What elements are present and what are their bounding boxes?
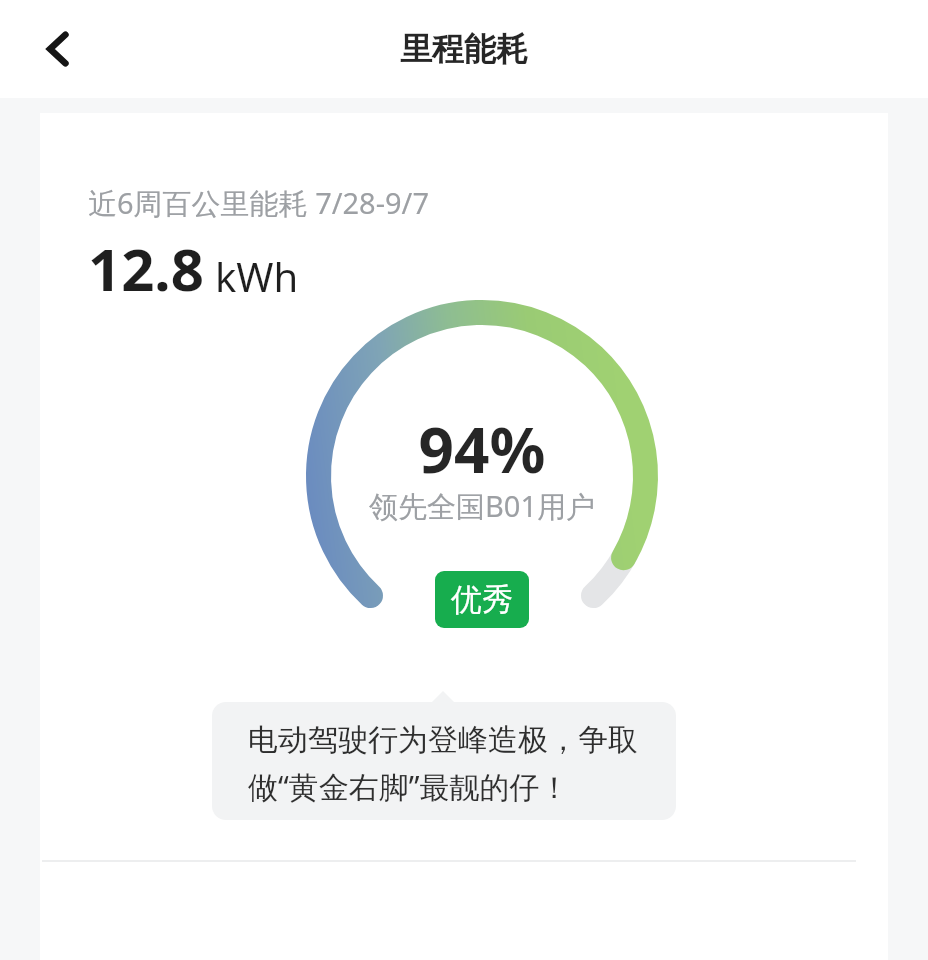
- staticText: 近6周百公里能耗 7/28-9/7: [88, 183, 429, 223]
- staticText: 电动驾驶行为登峰造极，争取 做“黄金右脚”最靓的仔！: [248, 721, 638, 807]
- staticText: 优秀: [451, 580, 513, 619]
- staticText: 12.8: [88, 229, 204, 308]
- staticText: 94%: [266, 407, 698, 491]
- staticText: 领先全国B01用户: [266, 486, 698, 526]
- staticText: 里程能耗: [400, 29, 528, 69]
- button[interactable]: 优秀: [435, 571, 529, 628]
- staticText: kWh: [215, 249, 299, 303]
- button[interactable]: Back: [24, 14, 94, 84]
